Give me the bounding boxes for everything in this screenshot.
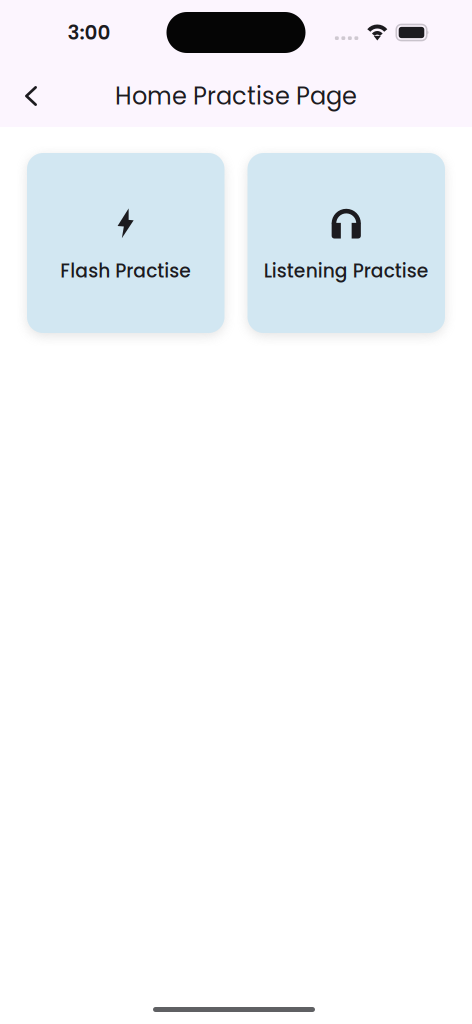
staticText: Listening Practise (264, 258, 429, 284)
button[interactable]: Back (9, 74, 53, 118)
staticText: Flash Practise (60, 258, 191, 284)
staticText: Home Practise Page (115, 79, 357, 113)
button[interactable]: Listening Practise (247, 153, 445, 333)
button[interactable]: Flash Practise (27, 153, 224, 333)
staticText: 3:00 (67, 18, 110, 46)
